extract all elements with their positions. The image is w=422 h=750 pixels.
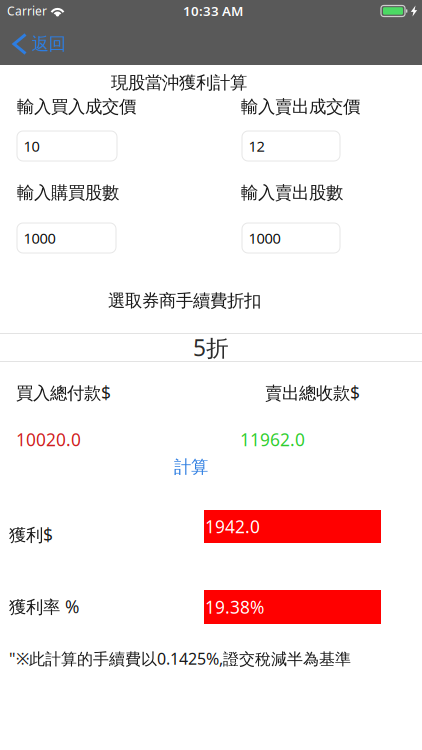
staticText: 1000 bbox=[248, 228, 280, 248]
staticText: 返回 bbox=[31, 33, 65, 55]
button[interactable]: 1000 bbox=[242, 223, 340, 253]
button[interactable]: 1000 bbox=[17, 223, 116, 253]
staticText: 1942.0 bbox=[205, 515, 260, 538]
staticText: 輸入賣出股數 bbox=[241, 182, 343, 203]
button[interactable]: 5折 bbox=[0, 334, 422, 361]
button[interactable]: 12 bbox=[242, 131, 340, 161]
staticText: 獲利$ bbox=[9, 523, 53, 546]
staticText: Carrier bbox=[7, 3, 47, 19]
staticText: 買入總付款$ bbox=[16, 381, 111, 404]
staticText: 輸入買入成交價 bbox=[17, 96, 136, 117]
staticText: 輸入賣出成交價 bbox=[241, 96, 360, 117]
staticText: 賣出總收款$ bbox=[265, 381, 360, 404]
staticText: 選取券商手續費折扣 bbox=[108, 290, 261, 311]
staticText: 12 bbox=[248, 136, 264, 156]
staticText: 5折 bbox=[193, 332, 229, 362]
staticText: 10 bbox=[23, 136, 39, 156]
staticText: 計算 bbox=[174, 456, 208, 478]
staticText: 1000 bbox=[23, 228, 55, 248]
staticText: "※此計算的手續費以0.1425%,證交稅減半為基準 bbox=[9, 648, 351, 669]
button[interactable]: 返回 bbox=[0, 24, 120, 64]
staticText: 10:33 AM bbox=[183, 2, 243, 20]
button[interactable]: 10 bbox=[17, 131, 117, 161]
staticText: 輸入購買股數 bbox=[17, 182, 119, 203]
staticText: 獲利率 % bbox=[9, 595, 79, 618]
staticText: 現股當沖獲利計算 bbox=[111, 72, 247, 93]
button[interactable]: 計算 bbox=[169, 455, 213, 479]
staticText: 11962.0 bbox=[240, 428, 305, 451]
staticText: 19.38% bbox=[205, 595, 264, 618]
staticText: 10020.0 bbox=[16, 428, 81, 451]
